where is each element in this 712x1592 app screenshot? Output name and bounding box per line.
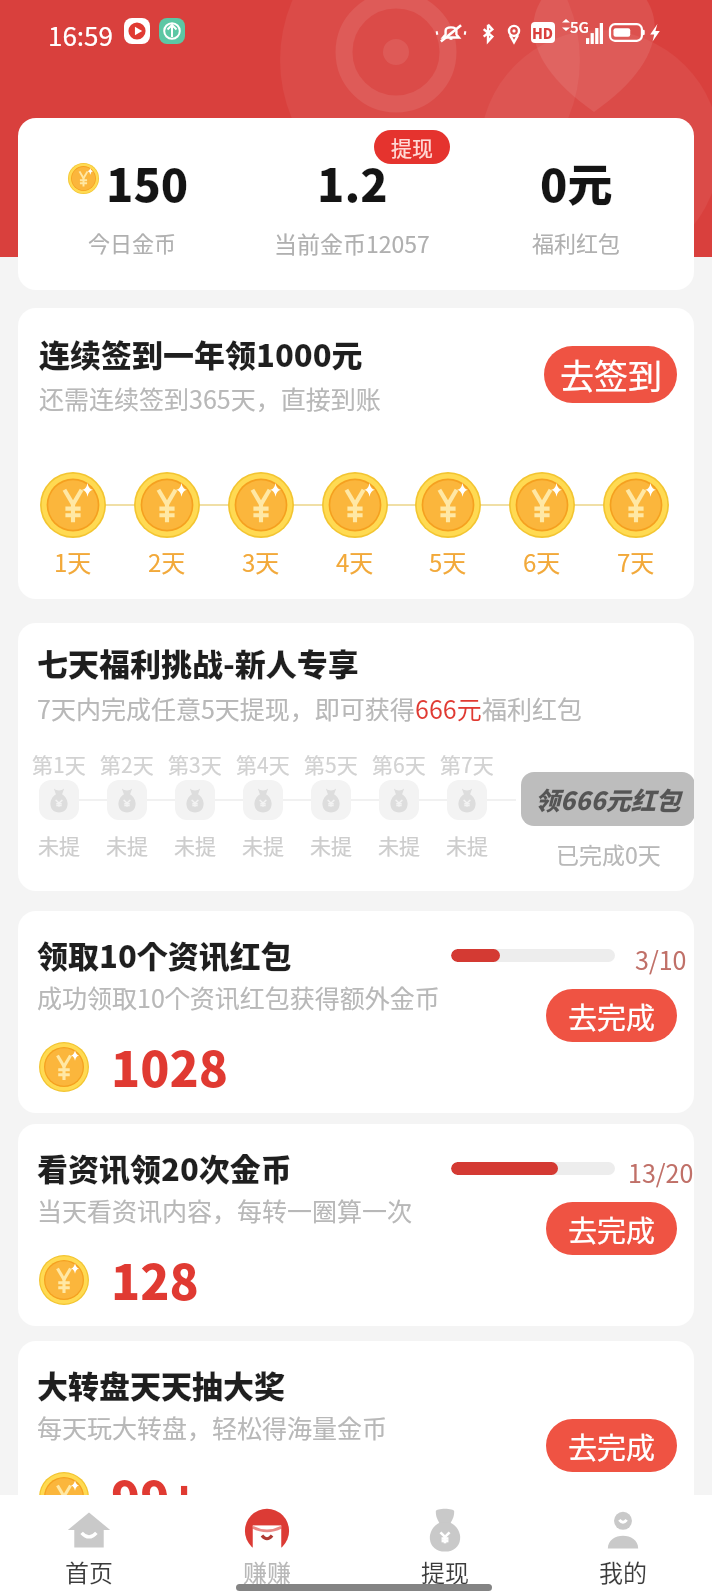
staticText: 去完成 — [568, 1425, 656, 1467]
staticText: 提现 — [421, 1554, 469, 1589]
staticText: 未提 — [174, 830, 216, 860]
staticText: 第7天 — [440, 749, 494, 779]
staticText: 未提 — [242, 830, 284, 860]
staticText: 第1天 — [32, 749, 86, 779]
staticText: 成功领取10个资讯红包获得额外金币 — [37, 979, 440, 1015]
staticText: 3天 — [242, 544, 280, 579]
staticText: 1.2 — [317, 150, 388, 215]
staticText: HD — [532, 23, 554, 43]
staticText: 福利红包 — [482, 690, 583, 726]
button[interactable]: 我的 — [534, 1495, 712, 1589]
staticText: 1天 — [54, 544, 92, 579]
button[interactable]: 提现 — [356, 1495, 534, 1589]
staticText: 连续签到一年领1000元 — [39, 331, 363, 376]
staticText: 未提 — [378, 830, 420, 860]
staticText: 未提 — [446, 830, 488, 860]
staticText: 我的 — [599, 1554, 647, 1589]
staticText: 当前金币12057 — [274, 226, 430, 259]
staticText: 4天 — [336, 544, 374, 579]
staticText: 2天 — [148, 544, 186, 579]
staticText: 5G — [570, 16, 590, 38]
button[interactable]: 领666元红包 — [521, 772, 694, 826]
staticText: 99+ — [111, 1461, 199, 1531]
staticText: 6天 — [523, 544, 561, 579]
staticText: 看资讯领20次金币 — [37, 1145, 292, 1190]
button[interactable]: 赚赚 — [178, 1495, 356, 1589]
staticText: 第5天 — [304, 749, 358, 779]
button[interactable]: 去完成 — [546, 989, 677, 1042]
button[interactable]: 去签到 — [544, 346, 677, 403]
staticText: 赚赚 — [243, 1554, 291, 1589]
staticText: 第6天 — [372, 749, 426, 779]
staticText: 每天玩大转盘，轻松得海量金币 — [37, 1409, 388, 1445]
staticText: 福利红包 — [532, 226, 621, 258]
staticText: 当天看资讯内容，每转一圈算一次 — [37, 1192, 413, 1228]
staticText: 第2天 — [100, 749, 154, 779]
staticText: 0元 — [540, 150, 613, 215]
staticText: 去完成 — [568, 1208, 656, 1250]
staticText: 第3天 — [168, 749, 222, 779]
staticText: 7天内完成任意5天提现，即可获得 — [37, 690, 415, 726]
button[interactable]: 去完成 — [546, 1202, 677, 1255]
staticText: 去完成 — [568, 995, 656, 1037]
staticText: 未提 — [38, 830, 80, 860]
button[interactable]: 首页 — [0, 1495, 178, 1589]
staticText: 去签到 — [560, 350, 662, 399]
staticText: 首页 — [65, 1554, 113, 1589]
staticText: 大转盘天天抽大奖 — [37, 1362, 285, 1407]
staticText: 1028 — [111, 1031, 228, 1101]
staticText: 已完成0天 — [556, 837, 661, 870]
staticText: 今日金币 — [88, 226, 177, 258]
staticText: 13/20 — [628, 1154, 694, 1190]
staticText: 领取10个资讯红包 — [37, 932, 292, 977]
staticText: 提现 — [391, 132, 433, 162]
staticText: 七天福利挑战-新人专享 — [37, 640, 359, 685]
staticText: 150 — [106, 150, 189, 215]
staticText: 128 — [111, 1244, 199, 1314]
staticText: 16:59 — [48, 16, 113, 54]
button[interactable]: 提现 — [374, 130, 450, 164]
staticText: 5天 — [429, 544, 467, 579]
staticText: 第4天 — [236, 749, 290, 779]
staticText: 还需连续签到365天，直接到账 — [39, 380, 381, 416]
staticText: 7天 — [617, 544, 655, 579]
staticText: 领666元红包 — [535, 781, 681, 817]
staticText: 未提 — [310, 830, 352, 860]
button[interactable]: 去完成 — [546, 1419, 677, 1472]
staticText: 未提 — [106, 830, 148, 860]
staticText: 3/10 — [635, 941, 687, 977]
staticText: 666元 — [415, 690, 482, 726]
